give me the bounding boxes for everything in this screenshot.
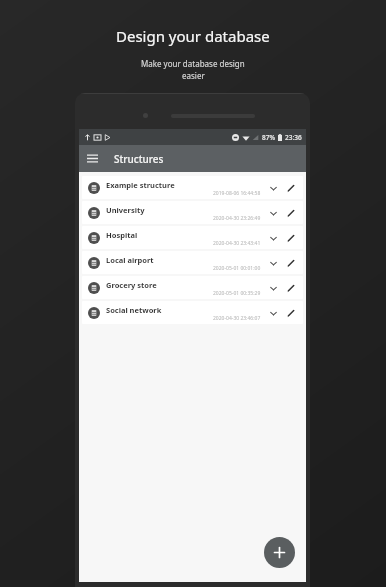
staticText: 2020-04-30 23:26:49 [213,215,261,222]
staticText: 2020-05-01 00:01:00 [213,265,261,272]
staticText: University [106,205,145,215]
staticText: Social network [106,305,162,315]
button[interactable]: Edit [283,255,299,271]
button[interactable]: Expand [265,280,281,296]
staticText: Structures [114,152,164,166]
staticText: easier [182,70,205,81]
button[interactable]: Edit [283,180,299,196]
button[interactable]: Social network [82,301,303,324]
button[interactable]: Expand [265,305,281,321]
button[interactable]: Edit [283,280,299,296]
button[interactable]: Edit [283,230,299,246]
staticText: Example structure [106,180,175,190]
staticText: Hospital [106,230,138,240]
button[interactable]: Expand [265,205,281,221]
staticText: 2020-04-30 23:43:41 [213,240,261,247]
button[interactable]: Expand [265,255,281,271]
staticText: 87% [262,133,275,142]
staticText: Local airport [106,255,154,265]
staticText: Grocery store [106,280,157,290]
button[interactable]: Open navigation drawer [79,145,106,172]
button[interactable]: Hospital [82,226,303,249]
button[interactable]: Local airport [82,251,303,274]
button[interactable]: Expand [265,230,281,246]
staticText: Make your database design [141,58,245,69]
button[interactable]: Edit [283,205,299,221]
button[interactable]: Add structure [264,537,295,568]
staticText: 2019-08-06 16:44:58 [213,190,261,197]
button[interactable]: Grocery store [82,276,303,299]
button[interactable]: University [82,201,303,224]
staticText: 23:36 [285,133,302,142]
button[interactable]: Edit [283,305,299,321]
staticText: Design your database [116,26,270,46]
staticText: 2020-05-01 00:35:29 [213,290,261,297]
staticText: 2020-04-30 23:46:07 [213,315,261,322]
button[interactable]: Example structure [82,176,303,199]
button[interactable]: Expand [265,180,281,196]
